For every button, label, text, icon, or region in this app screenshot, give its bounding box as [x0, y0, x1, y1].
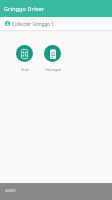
- staticText: Collector Gringgo 1: [12, 21, 54, 27]
- other: Scan: [21, 49, 28, 59]
- other: Tabungan: [50, 49, 56, 59]
- staticText: LOGOUT: [5, 189, 16, 193]
- button[interactable]: Tabungan: [44, 45, 61, 72]
- button[interactable]: Scan: [16, 45, 33, 72]
- button[interactable]: LOGOUT: [0, 183, 112, 200]
- staticText: Scan: [21, 67, 29, 72]
- staticText: Gringgo Driver: [4, 5, 45, 12]
- button[interactable]: Collector Gringgo 1: [0, 17, 112, 30]
- staticText: Tabungan: [45, 67, 61, 72]
